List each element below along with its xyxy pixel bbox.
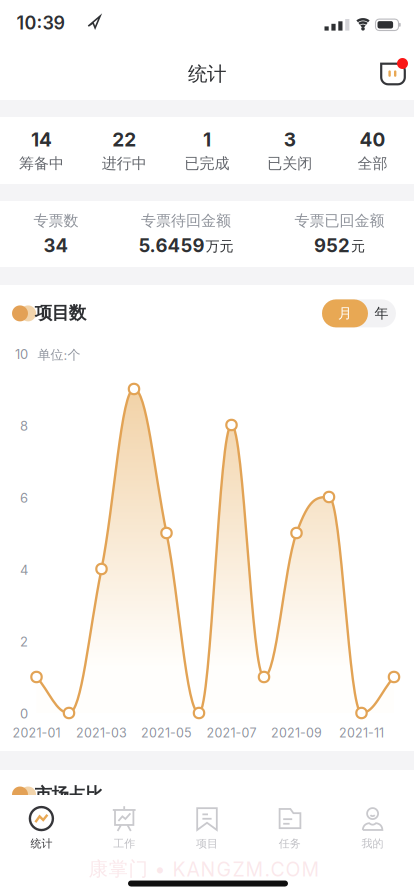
staticText: 项目: [196, 837, 218, 850]
button[interactable]: 年: [367, 299, 395, 327]
staticText: 万元: [205, 237, 233, 255]
button[interactable]: 消息: [377, 59, 409, 89]
staticText: 项目数: [35, 302, 86, 324]
staticText: 14: [31, 128, 52, 151]
staticText: 统计: [30, 837, 52, 850]
staticText: 2021-09: [271, 725, 322, 740]
staticText: 专票待回金额: [141, 211, 231, 230]
button[interactable]: 我的: [331, 797, 414, 859]
staticText: 3: [284, 128, 296, 151]
staticText: 元: [351, 237, 365, 255]
staticText: 2021-07: [206, 725, 256, 740]
button[interactable]: 工作: [83, 797, 166, 859]
staticText: 5.6459: [138, 234, 204, 257]
staticText: 统计: [188, 62, 226, 86]
staticText: 市场占比: [34, 783, 102, 805]
button[interactable]: 任务: [248, 797, 331, 859]
staticText: 全部: [358, 154, 388, 173]
staticText: 已关闭: [267, 154, 312, 173]
staticText: 2: [20, 634, 28, 650]
staticText: 已完成: [184, 154, 229, 173]
button[interactable]: 月: [322, 299, 368, 327]
staticText: 40: [360, 128, 386, 151]
staticText: 4: [20, 562, 28, 578]
staticText: 34: [43, 234, 68, 257]
staticText: 2021-05: [141, 725, 192, 740]
staticText: 专票数: [33, 211, 78, 230]
button[interactable]: 项目: [166, 797, 248, 859]
staticText: 专票已回金额: [294, 211, 384, 230]
staticText: 10: [15, 346, 28, 362]
staticText: 0: [20, 706, 28, 721]
staticText: 2021-01: [12, 725, 60, 740]
staticText: 22: [112, 128, 136, 151]
staticText: 10:39: [16, 12, 65, 34]
staticText: 6: [20, 490, 28, 506]
staticText: 进行中: [102, 154, 147, 173]
staticText: 月: [338, 305, 352, 322]
staticText: 单位:个: [37, 347, 80, 363]
staticText: 任务: [279, 837, 301, 850]
staticText: 康掌门 • KANGZM.COM: [88, 857, 319, 881]
staticText: 952: [314, 234, 350, 257]
staticText: 2021-03: [76, 725, 127, 740]
staticText: 8: [20, 418, 28, 434]
staticText: 1: [203, 128, 211, 151]
button[interactable]: 统计: [0, 797, 83, 859]
staticText: 年: [374, 305, 388, 322]
staticText: 我的: [362, 837, 384, 850]
staticText: 筹备中: [19, 154, 64, 173]
staticText: 2021-11: [339, 725, 384, 740]
staticText: 工作: [113, 837, 135, 850]
